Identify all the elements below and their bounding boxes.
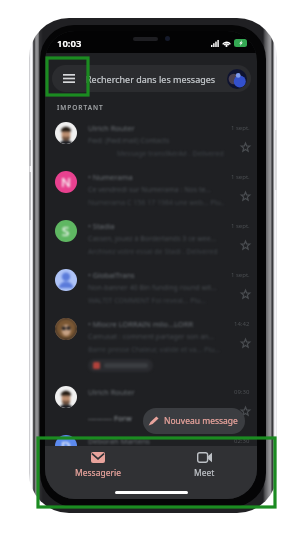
staticText: 14:42: [234, 320, 250, 328]
staticText: Nouveau message: [164, 415, 238, 427]
staticText: Message suivant: [88, 449, 143, 459]
staticText: Barre presse Chaleur, valide et va… Plu…: [88, 345, 220, 355]
staticText: Fwd: (Fwd:mail) Contacts: [88, 136, 170, 146]
staticText: Cassen, jouez à Borderlands 3 ce wee…: [88, 234, 217, 244]
staticText: WALTIT COMMENT Foi reveal… Plu…: [88, 296, 207, 306]
staticText: Message transfAérAé . Delivered: [117, 149, 224, 159]
button[interactable]: Nouveau message: [143, 408, 245, 434]
button[interactable]: Meet: [151, 446, 257, 485]
staticText: Meet: [194, 467, 215, 479]
staticText: Ulrich Router: [88, 387, 135, 397]
staticText: Ulrich Router: [88, 123, 135, 133]
staticText: 09:30: [234, 388, 250, 396]
staticText: Messagerie: [75, 467, 121, 479]
staticText: 10:03: [57, 37, 82, 50]
staticText: D: [61, 437, 71, 455]
staticText: Archivez votre essai de Stadi . Delivere…: [88, 247, 218, 257]
staticText: • GlobalTrans: [88, 270, 135, 280]
staticText: 1 sept.: [231, 173, 250, 181]
staticText: Contenu du message ici: [88, 462, 167, 472]
staticText: 1 sept.: [231, 124, 250, 132]
staticText: • Mlocre LORRAIN mllo…LORR: [88, 319, 194, 329]
staticText: ---------- Forw: [88, 413, 132, 423]
button[interactable]: • GlobalTrans: [45, 265, 257, 314]
button[interactable]: Ulrich Router: [45, 118, 257, 167]
button[interactable]: Compte Google: [227, 69, 247, 89]
staticText: N: [61, 173, 71, 191]
staticText: S: [62, 222, 70, 240]
button[interactable]: Messagerie: [45, 446, 151, 485]
staticText: 02:30: [234, 437, 250, 445]
staticText: IMPORTANT: [57, 103, 104, 112]
staticText: Rechercher dans les messages: [86, 73, 216, 85]
staticText: Deborah Martens: [88, 436, 150, 446]
staticText: 1 sept.: [231, 222, 250, 230]
staticText: Numerama C 156 17 1984 une web… Plu…: [88, 198, 224, 208]
staticText: Non-banner 40 Bin funding round wit…: [88, 283, 217, 293]
staticText: • Numerama: [88, 172, 133, 182]
button[interactable]: N: [45, 167, 257, 216]
staticText: 1 sept.: [231, 271, 250, 279]
button[interactable]: S: [45, 216, 257, 265]
staticText: • Stadia: [88, 221, 115, 231]
button[interactable]: • Mlocre LORRAIN mllo…LORR: [45, 314, 257, 382]
staticText: Camusat : comment partager son an…: [88, 332, 214, 342]
button[interactable]: Menu principal: [52, 65, 86, 92]
button[interactable]: Ulrich Router: [45, 382, 257, 431]
button[interactable]: D: [45, 431, 257, 480]
staticText: Ce vendredi sur Numerama : Nos te…: [88, 185, 211, 195]
